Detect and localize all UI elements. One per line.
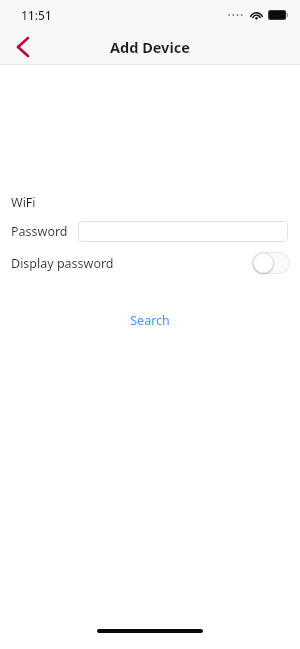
- staticText: Search: [130, 312, 170, 329]
- button[interactable]: WiFi: [0, 189, 300, 215]
- staticText: WiFi: [11, 194, 36, 211]
- staticText: Display password: [11, 255, 114, 272]
- button[interactable]: Search: [116, 308, 184, 333]
- button[interactable]: Display password toggle: [252, 252, 290, 274]
- staticText: Password: [11, 223, 68, 240]
- button[interactable]: Back: [0, 30, 44, 64]
- staticText: Add Device: [110, 37, 190, 57]
- button[interactable]: [78, 221, 288, 242]
- staticText: 11:51: [21, 7, 52, 23]
